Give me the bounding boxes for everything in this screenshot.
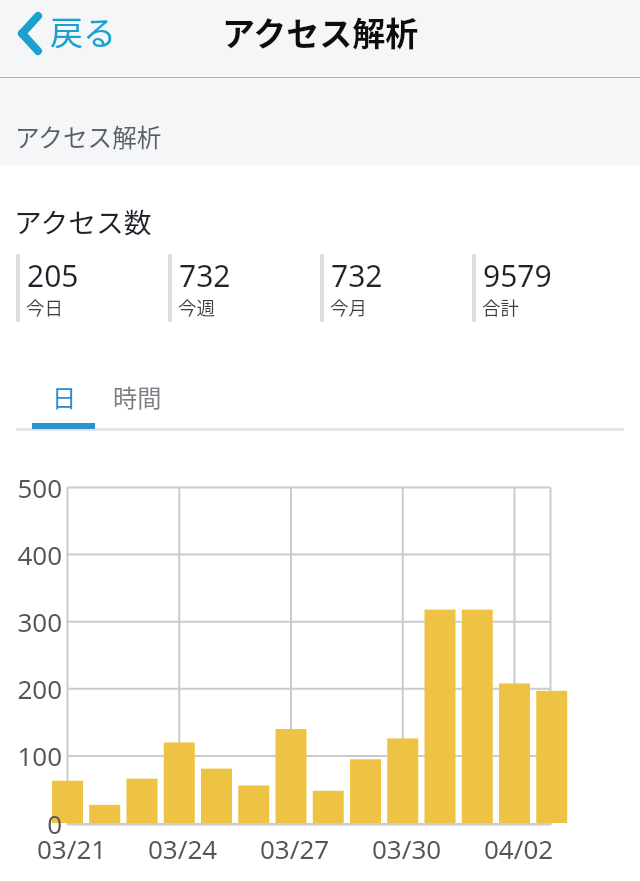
staticText: 100 [17, 738, 62, 773]
staticText: アクセス解析 [222, 8, 419, 56]
staticText: 今週 [178, 294, 216, 321]
staticText: 03/30 [372, 831, 442, 866]
button[interactable]: 時間 [111, 370, 206, 430]
button[interactable]: 日 [16, 370, 111, 430]
staticText: 今日 [26, 294, 64, 321]
button[interactable]: 戻る [0, 1, 130, 78]
staticText: 732 [331, 255, 383, 296]
staticText: 200 [17, 671, 62, 706]
staticText: 03/21 [37, 831, 107, 866]
staticText: 今月 [330, 294, 368, 321]
staticText: 合計 [482, 294, 520, 321]
staticText: 日 [52, 379, 77, 414]
staticText: アクセス解析 [15, 118, 162, 154]
staticText: 戻る [50, 7, 116, 55]
staticText: 205 [27, 255, 79, 296]
staticText: 400 [17, 537, 62, 572]
staticText: 時間 [113, 379, 162, 414]
staticText: 03/27 [260, 831, 330, 866]
staticText: 300 [17, 604, 62, 639]
staticText: 9579 [483, 255, 552, 296]
staticText: 732 [179, 255, 231, 296]
staticText: 0 [47, 806, 62, 841]
staticText: アクセス数 [14, 201, 152, 241]
staticText: 03/24 [148, 831, 218, 866]
staticText: 04/02 [484, 831, 554, 866]
staticText: 500 [17, 470, 62, 505]
